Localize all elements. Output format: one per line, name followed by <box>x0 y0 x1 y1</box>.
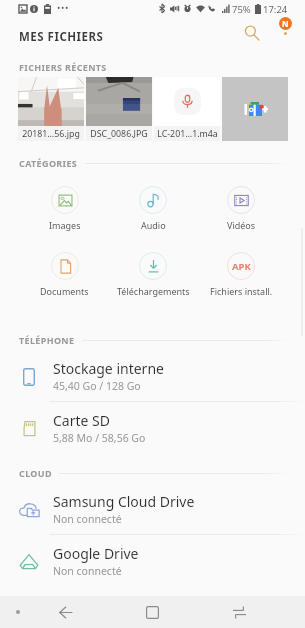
staticText: Téléchargements <box>117 285 190 297</box>
staticText: Samsung Cloud Drive <box>53 492 195 511</box>
button[interactable]: Carte SD <box>0 402 305 454</box>
staticText: Fichiers install. <box>210 285 273 297</box>
staticText: MES FICHIERS <box>19 29 104 45</box>
staticText: LC-201…1.m4a <box>157 128 218 140</box>
button[interactable]: LC-201…1.m4a <box>154 77 220 141</box>
button[interactable]: Documents <box>20 252 109 297</box>
staticText: ••• <box>57 1 69 13</box>
button[interactable]: Google Drive <box>0 535 305 587</box>
staticText: Non connecté <box>53 512 122 526</box>
button[interactable]: Samsung Cloud Drive <box>0 483 305 535</box>
staticText: Carte SD <box>53 411 110 430</box>
button[interactable]: 20181…56.jpg <box>18 77 84 141</box>
staticText: N <box>282 18 289 29</box>
button[interactable]: Téléchargements <box>109 252 197 297</box>
staticText: CATÉGORIES <box>19 157 78 169</box>
staticText: FICHIERS RÉCENTS <box>19 61 107 73</box>
staticText: 20181…56.jpg <box>22 128 80 140</box>
button[interactable]: Retour <box>22 596 109 628</box>
staticText: TÉLÉPHONE <box>19 334 75 346</box>
staticText: 5,88 Mo / 58,56 Go <box>53 431 146 445</box>
button[interactable]: Accueil <box>109 596 196 628</box>
button[interactable]: APK <box>197 252 285 297</box>
button[interactable]: Fichier récent <box>222 77 288 141</box>
staticText: Stockage interne <box>53 359 164 378</box>
staticText: 45,40 Go / 128 Go <box>53 379 141 393</box>
staticText: CLOUD <box>19 467 52 479</box>
button[interactable]: DSC_0086.JPG <box>86 77 152 141</box>
staticText: Non connecté <box>53 564 122 578</box>
button[interactable]: Rechercher <box>239 20 265 46</box>
staticText: Vidéos <box>227 219 256 231</box>
staticText: Images <box>49 219 81 231</box>
button[interactable]: Images <box>20 186 109 231</box>
staticText: Documents <box>40 285 89 297</box>
button[interactable]: Audio <box>109 186 197 231</box>
button[interactable]: Vidéos <box>197 186 285 231</box>
button[interactable]: Stockage interne <box>0 350 305 402</box>
staticText: Audio <box>141 219 166 231</box>
staticText: APK <box>232 260 251 273</box>
staticText: 17:24 <box>263 3 288 16</box>
button[interactable]: Compte Norton <box>272 17 298 43</box>
staticText: Google Drive <box>53 544 139 563</box>
button[interactable]: Applications récentes <box>196 596 283 628</box>
staticText: DSC_0086.JPG <box>90 128 148 140</box>
staticText: 75% <box>232 3 251 16</box>
